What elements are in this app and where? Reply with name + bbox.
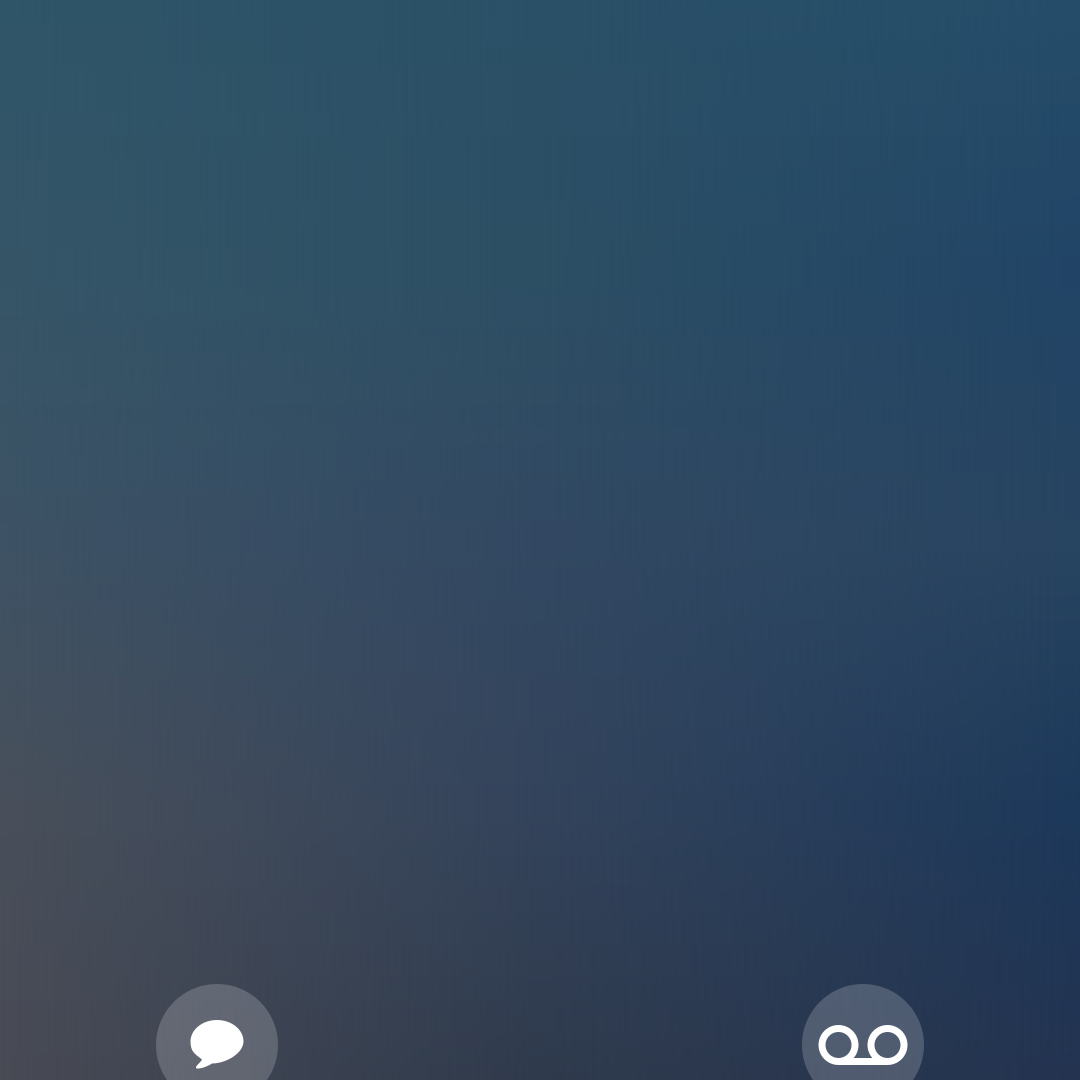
button[interactable]: Open Voicemail — [802, 984, 924, 1080]
button[interactable]: Open Messages — [156, 984, 278, 1080]
